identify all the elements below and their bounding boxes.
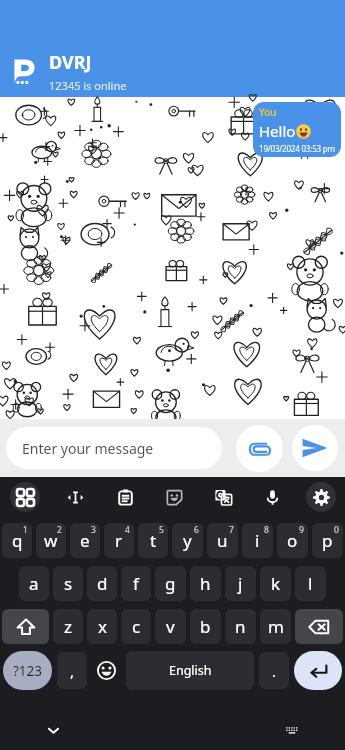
staticText: English: [169, 662, 212, 679]
button[interactable]: x: [87, 609, 117, 644]
staticText: k: [271, 572, 281, 595]
staticText: 6: [194, 524, 199, 536]
staticText: z: [64, 615, 72, 638]
staticText: m: [268, 615, 284, 638]
staticText: d: [97, 572, 108, 595]
button[interactable]: k: [260, 566, 291, 601]
staticText: v: [166, 615, 175, 638]
staticText: 5: [159, 524, 164, 536]
button[interactable]: r: [104, 523, 134, 558]
staticText: f: [133, 572, 139, 595]
button[interactable]: s: [53, 566, 83, 601]
button[interactable]: English: [126, 651, 254, 690]
staticText: 2: [57, 524, 62, 536]
staticText: b: [200, 615, 211, 638]
staticText: 3: [91, 524, 96, 536]
staticText: Hello: [259, 121, 296, 141]
button[interactable]: t: [138, 523, 168, 558]
staticText: DVRJ: [49, 50, 92, 75]
button[interactable]: Voice input: [247, 477, 296, 517]
staticText: h: [200, 572, 211, 595]
staticText: u: [217, 529, 228, 552]
staticText: g: [165, 572, 176, 595]
staticText: w: [44, 529, 58, 552]
staticText: ?123: [13, 662, 43, 680]
staticText: a: [29, 572, 39, 595]
button[interactable]: f: [121, 566, 151, 601]
button[interactable]: Stickers: [149, 477, 198, 517]
staticText: .: [272, 661, 277, 681]
staticText: 0: [334, 524, 339, 536]
button[interactable]: m: [260, 609, 291, 644]
button[interactable]: Emoji: [91, 652, 121, 689]
button[interactable]: .: [259, 652, 289, 689]
staticText: You: [259, 105, 277, 119]
staticText: l: [308, 572, 313, 595]
staticText: n: [235, 615, 246, 638]
button[interactable]: j: [225, 566, 256, 601]
staticText: 19/03/2024 03:53 pm: [259, 143, 335, 154]
staticText: y: [183, 529, 192, 552]
staticText: o: [287, 529, 298, 552]
button[interactable]: h: [190, 566, 221, 601]
staticText: ,: [70, 661, 75, 681]
button[interactable]: c: [121, 609, 151, 644]
button[interactable]: Apps: [0, 477, 50, 517]
staticText: 7: [229, 524, 234, 536]
button[interactable]: Switch keyboard: [271, 710, 313, 750]
button[interactable]: ,: [57, 652, 87, 689]
staticText: j: [238, 572, 243, 595]
button[interactable]: Clipboard: [100, 477, 149, 517]
button[interactable]: b: [190, 609, 221, 644]
staticText: c: [132, 615, 141, 638]
button[interactable]: v: [155, 609, 186, 644]
button[interactable]: e: [70, 523, 100, 558]
button[interactable]: u: [207, 523, 238, 558]
button[interactable]: Text edit: [50, 477, 100, 517]
button[interactable]: w: [36, 523, 66, 558]
staticText: i: [255, 529, 260, 552]
button[interactable]: g: [155, 566, 186, 601]
staticText: s: [64, 572, 73, 595]
button[interactable]: Send message: [292, 425, 338, 471]
staticText: 9: [299, 524, 304, 536]
staticText: r: [115, 529, 123, 552]
staticText: e: [80, 529, 90, 552]
staticText: 4: [125, 524, 130, 536]
button[interactable]: o: [277, 523, 308, 558]
button[interactable]: y: [172, 523, 203, 558]
button[interactable]: Hide keyboard: [32, 710, 74, 750]
button[interactable]: Enter: [294, 651, 342, 690]
staticText: 1: [23, 524, 28, 536]
button[interactable]: q: [2, 523, 32, 558]
staticText: 8: [264, 524, 269, 536]
staticText: x: [98, 615, 107, 638]
button[interactable]: ?123: [3, 651, 52, 690]
button[interactable]: Translate: [198, 477, 247, 517]
button[interactable]: z: [53, 609, 83, 644]
button[interactable]: Enter your message: [6, 427, 222, 469]
staticText: Enter your message: [22, 439, 154, 458]
staticText: q: [12, 529, 23, 552]
button[interactable]: a: [19, 566, 49, 601]
staticText: p: [322, 529, 333, 552]
button[interactable]: Backspace: [295, 609, 343, 644]
button[interactable]: d: [87, 566, 117, 601]
button[interactable]: l: [295, 566, 326, 601]
staticText: t: [150, 529, 157, 552]
staticText: 12345 is online: [49, 78, 127, 93]
button[interactable]: Settings: [296, 477, 345, 517]
button[interactable]: Attach file: [236, 425, 283, 472]
button[interactable]: i: [242, 523, 273, 558]
button[interactable]: n: [225, 609, 256, 644]
button[interactable]: Shift: [2, 609, 49, 644]
button[interactable]: p: [312, 523, 343, 558]
